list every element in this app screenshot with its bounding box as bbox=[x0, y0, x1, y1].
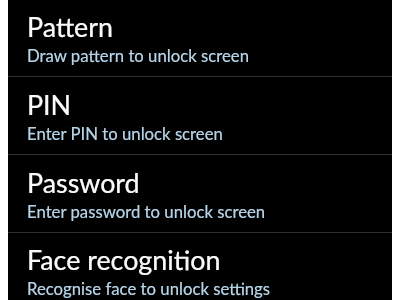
button[interactable]: Face recognition bbox=[8, 231, 392, 300]
button[interactable]: Password bbox=[8, 154, 392, 232]
button[interactable]: PIN bbox=[8, 76, 392, 154]
staticText: Enter password to unlock screen bbox=[27, 201, 266, 221]
staticText: Enter PIN to unlock screen bbox=[27, 123, 223, 143]
staticText: Password bbox=[27, 167, 140, 199]
staticText: PIN bbox=[27, 89, 72, 121]
staticText: Pattern bbox=[27, 11, 113, 43]
staticText: Recognise face to unlock settings bbox=[27, 278, 271, 298]
button[interactable]: Pattern bbox=[8, 0, 392, 76]
staticText: Draw pattern to unlock screen bbox=[27, 45, 249, 65]
staticText: Face recognition bbox=[27, 244, 221, 276]
